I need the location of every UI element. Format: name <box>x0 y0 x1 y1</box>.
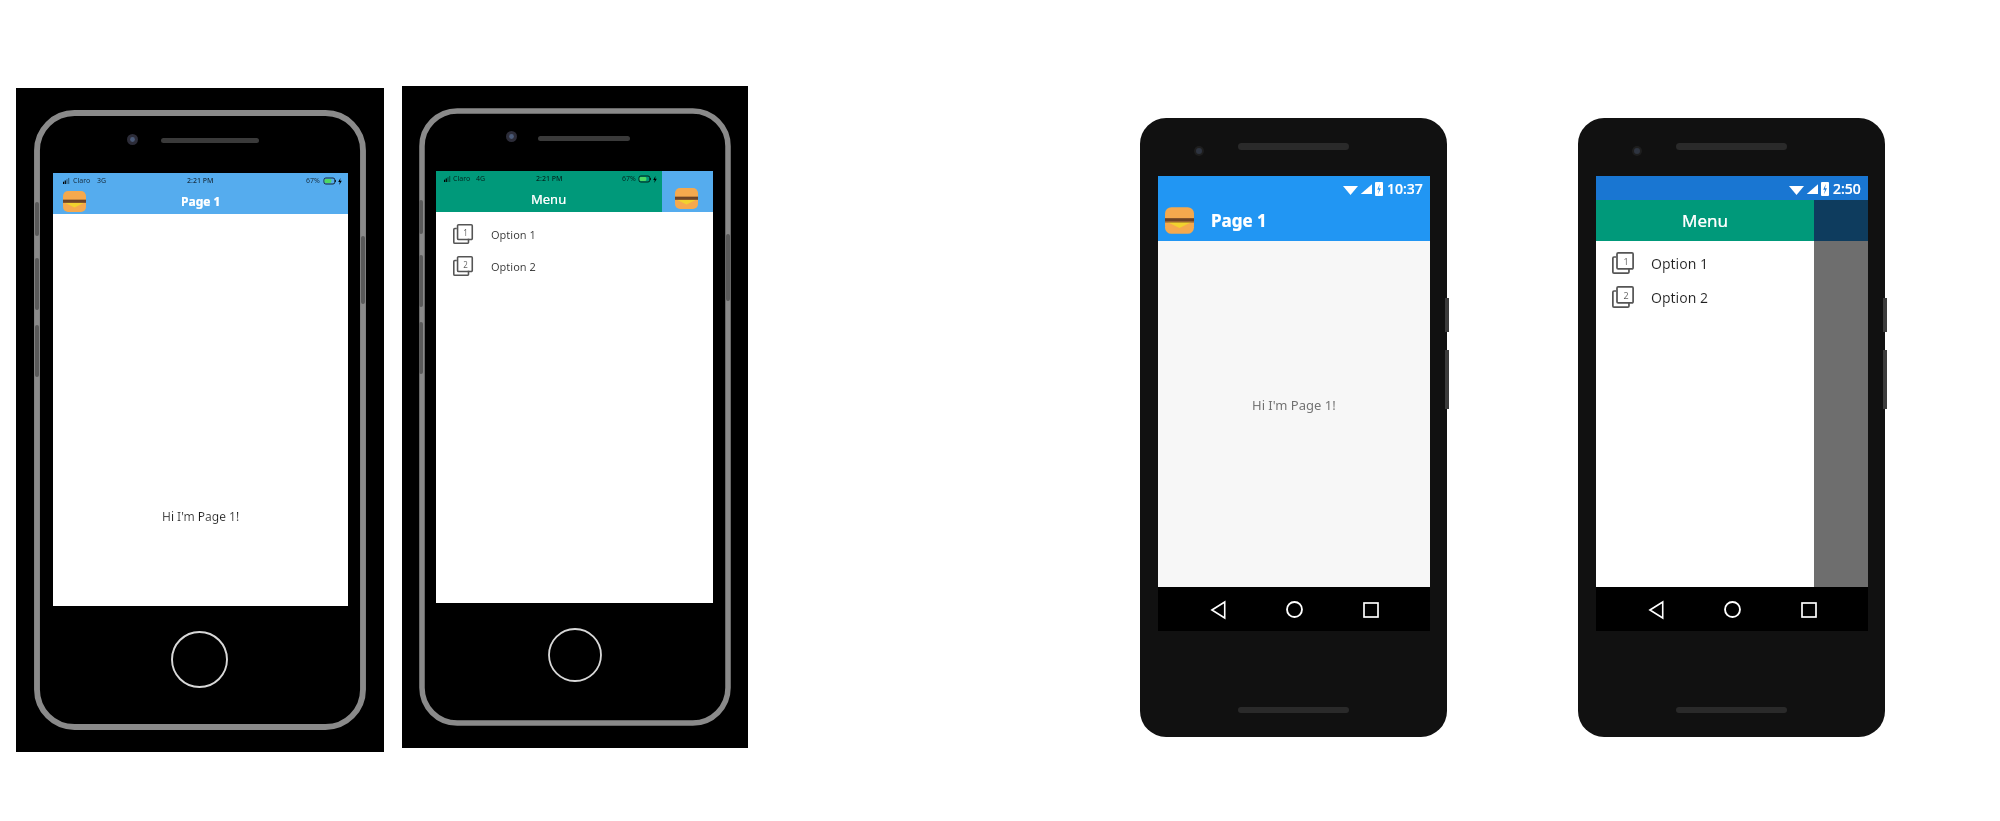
staticText: Option 2 <box>1651 288 1708 307</box>
staticText: Option 2 <box>491 259 536 274</box>
button[interactable]: 1 <box>1596 246 1814 280</box>
button[interactable]: Open menu <box>63 190 86 213</box>
staticText: 2:21 PM <box>536 174 563 184</box>
staticText: Page 1 <box>1211 209 1267 232</box>
staticText: Claro <box>73 176 91 186</box>
button[interactable]: Recents <box>1791 592 1826 627</box>
staticText: 67% <box>622 174 636 184</box>
staticText: Page 1 <box>181 193 221 209</box>
staticText: 2:21 PM <box>187 176 214 186</box>
staticText: 2 <box>463 259 468 270</box>
staticText: Hi I'm Page 1! <box>1252 396 1336 414</box>
button[interactable]: Home <box>1277 592 1312 627</box>
staticText: 67% <box>306 176 320 186</box>
button[interactable]: 2 <box>436 250 662 282</box>
button[interactable]: Back <box>1200 592 1235 627</box>
button[interactable]: Recents <box>1353 592 1388 627</box>
staticText: 4G <box>476 174 486 184</box>
staticText: Claro <box>453 174 471 184</box>
button[interactable]: 1 <box>436 218 662 250</box>
button[interactable]: Open menu <box>1165 206 1194 235</box>
button[interactable]: Home <box>1715 592 1750 627</box>
staticText: 10:37 <box>1387 179 1423 198</box>
staticText: 2 <box>1623 289 1629 301</box>
staticText: Option 1 <box>1651 254 1708 273</box>
staticText: 2:50 <box>1833 179 1861 198</box>
staticText: 3G <box>97 176 107 186</box>
button[interactable]: 2 <box>1596 280 1814 314</box>
staticText: 1 <box>463 227 468 238</box>
staticText: Option 1 <box>491 227 536 242</box>
staticText: Menu <box>531 190 567 208</box>
button[interactable]: Back <box>1638 592 1673 627</box>
staticText: 1 <box>1623 255 1629 267</box>
staticText: Hi I'm Page 1! <box>162 508 240 524</box>
staticText: Menu <box>1682 209 1729 232</box>
